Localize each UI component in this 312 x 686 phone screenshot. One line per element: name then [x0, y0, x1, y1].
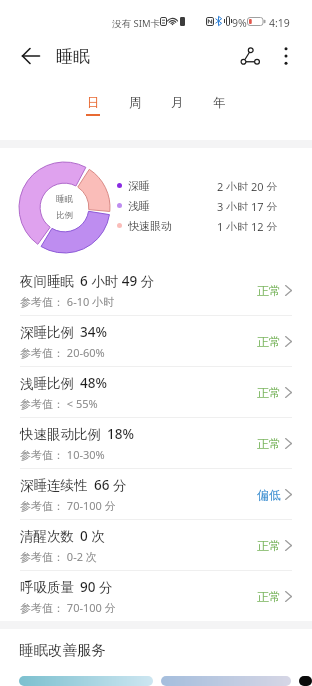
staticText: 浅睡比例 [20, 375, 74, 392]
staticText: 睡眠改善服务 [19, 641, 106, 659]
button[interactable]: More options [266, 36, 306, 76]
button[interactable]: Back [0, 32, 62, 80]
staticText: 34% [80, 323, 107, 341]
staticText: 快速眼动 [128, 219, 172, 231]
staticText: 正常 [257, 436, 281, 451]
staticText: 3 小时 17 分 [217, 199, 278, 211]
staticText: 呼吸质量 [20, 579, 74, 596]
staticText: 参考值： 10-30% [20, 447, 105, 462]
button[interactable]: 月 [156, 95, 198, 127]
button[interactable]: 日 [72, 95, 114, 127]
button[interactable]: 夜间睡眠 [0, 265, 312, 315]
staticText: 18% [107, 425, 134, 443]
staticText: 4:19 [269, 16, 290, 30]
staticText: 参考值： < 55% [20, 396, 98, 411]
staticText: 参考值： 20-60% [20, 345, 105, 360]
staticText: 睡眠 [56, 194, 73, 205]
staticText: 年 [213, 95, 226, 111]
staticText: 90 分 [80, 578, 113, 596]
staticText: 正常 [257, 283, 281, 298]
staticText: 月 [171, 95, 184, 111]
staticText: 夜间睡眠 [20, 273, 74, 290]
staticText: 参考值： 70-100 分 [20, 498, 116, 513]
button[interactable]: 周 [114, 95, 156, 127]
staticText: 清醒次数 [20, 528, 74, 545]
staticText: 66 分 [94, 476, 127, 494]
staticText: 参考值： 0-2 次 [20, 549, 97, 564]
staticText: 快速眼动比例 [20, 426, 101, 443]
staticText: 睡眠 [56, 46, 90, 67]
button[interactable]: 年 [198, 95, 240, 127]
staticText: 深睡 [128, 179, 150, 191]
button[interactable]: 深睡连续性 [0, 469, 312, 519]
button[interactable] [299, 676, 312, 686]
staticText: 正常 [257, 538, 281, 553]
staticText: 6 小时 49 分 [80, 272, 155, 290]
button[interactable]: 快速眼动比例 [0, 418, 312, 468]
staticText: 深睡比例 [20, 324, 74, 341]
staticText: 48% [80, 374, 107, 392]
button[interactable]: 呼吸质量 [0, 571, 312, 621]
button[interactable]: 清醒次数 [0, 520, 312, 570]
staticText: 比例 [56, 210, 73, 221]
staticText: 浅睡 [128, 199, 150, 211]
staticText: 参考值： 70-100 分 [20, 600, 116, 615]
staticText: 深睡连续性 [20, 477, 88, 494]
staticText: 2 小时 20 分 [217, 179, 278, 191]
staticText: 9% [232, 16, 247, 30]
button[interactable]: 深睡比例 [0, 316, 312, 366]
button[interactable] [19, 676, 153, 686]
button[interactable]: Share [222, 34, 266, 78]
staticText: 正常 [257, 334, 281, 349]
staticText: 正常 [257, 589, 281, 604]
staticText: 参考值： 6-10 小时 [20, 294, 115, 309]
staticText: 没有 SIM卡 [112, 17, 161, 30]
button[interactable] [161, 676, 291, 686]
button[interactable]: 浅睡比例 [0, 367, 312, 417]
staticText: 日 [87, 95, 100, 111]
staticText: 周 [129, 95, 142, 111]
staticText: 正常 [257, 385, 281, 400]
staticText: 1 小时 12 分 [217, 219, 278, 231]
staticText: 0 次 [80, 527, 105, 545]
staticText: 偏低 [257, 487, 281, 502]
